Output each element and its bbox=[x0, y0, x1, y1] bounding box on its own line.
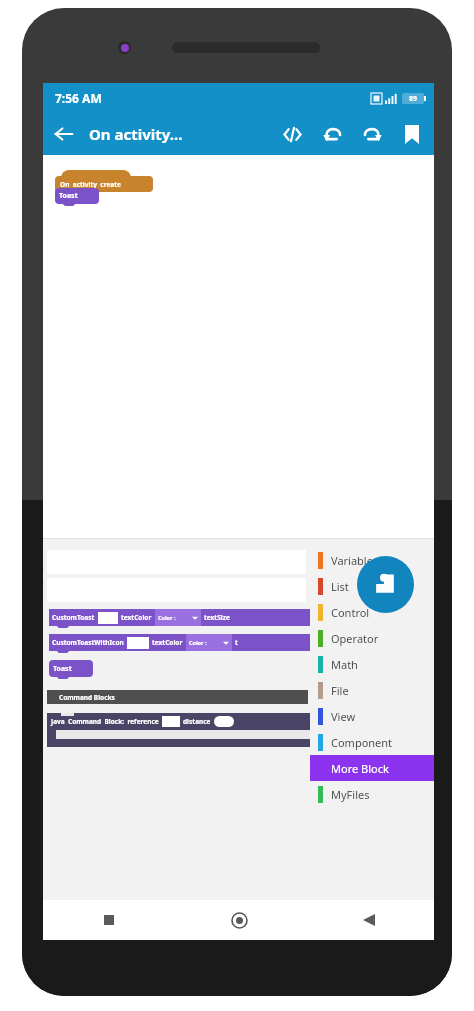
button[interactable]: Redo bbox=[352, 114, 392, 154]
button[interactable]: View bbox=[310, 703, 434, 729]
button[interactable]: Operator bbox=[310, 625, 434, 651]
button[interactable]: Recents bbox=[43, 900, 174, 940]
staticText: t bbox=[235, 638, 238, 647]
button[interactable]: Toast bbox=[55, 188, 99, 204]
staticText: Component bbox=[331, 735, 393, 750]
button[interactable]: Math bbox=[310, 651, 434, 677]
staticText: 89 bbox=[409, 94, 418, 104]
staticText: More Block bbox=[331, 761, 389, 776]
button[interactable]: Back bbox=[304, 900, 434, 940]
button[interactable]: Toast bbox=[49, 660, 93, 677]
staticText: Operator bbox=[331, 631, 379, 646]
staticText: Java Command Block: reference bbox=[51, 717, 159, 726]
staticText: textColor bbox=[121, 613, 152, 622]
staticText: Toast bbox=[59, 191, 78, 201]
staticText: Command Blocks bbox=[59, 693, 115, 702]
button[interactable]: Home bbox=[174, 900, 304, 940]
staticText: CustomToast bbox=[52, 613, 95, 622]
staticText: CustomToastWithIcon bbox=[52, 638, 124, 647]
staticText: Color : bbox=[158, 614, 176, 621]
button[interactable]: Variable bbox=[310, 547, 434, 573]
button[interactable]: MyFiles bbox=[310, 781, 434, 807]
button[interactable]: More Block bbox=[310, 755, 434, 781]
staticText: textSize bbox=[204, 613, 230, 622]
staticText: File bbox=[331, 683, 349, 698]
button[interactable]: CustomToast bbox=[49, 609, 310, 626]
button[interactable]: File bbox=[310, 677, 434, 703]
button[interactable]: On activity create bbox=[55, 176, 153, 192]
button[interactable]: Undo bbox=[312, 114, 352, 154]
button[interactable]: Add block bbox=[357, 556, 414, 613]
button[interactable]: Control bbox=[310, 599, 434, 625]
staticText: 7:56 AM bbox=[55, 90, 102, 106]
button[interactable]: List bbox=[310, 573, 434, 599]
button[interactable]: Back bbox=[43, 113, 85, 155]
staticText: List bbox=[331, 579, 349, 594]
staticText: Control bbox=[331, 605, 370, 620]
staticText: distance bbox=[183, 717, 211, 726]
button[interactable]: Component bbox=[310, 729, 434, 755]
staticText: Variable bbox=[331, 553, 373, 568]
button[interactable]: CustomToastWithIcon bbox=[49, 634, 310, 651]
staticText: Color : bbox=[189, 639, 207, 646]
staticText: Toast bbox=[53, 664, 72, 674]
button[interactable]: Bookmark bbox=[392, 114, 432, 154]
staticText: Math bbox=[331, 657, 358, 672]
staticText: textColor bbox=[152, 638, 183, 647]
staticText: MyFiles bbox=[331, 787, 370, 802]
staticText: On activity... bbox=[89, 124, 183, 144]
staticText: View bbox=[331, 709, 356, 724]
button[interactable]: Source code bbox=[272, 114, 312, 154]
staticText: On activity create bbox=[60, 180, 121, 189]
